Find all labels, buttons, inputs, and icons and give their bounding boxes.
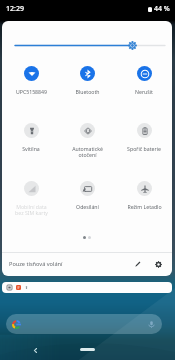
button[interactable]: Settings	[151, 257, 165, 271]
button[interactable]: Home	[80, 348, 95, 351]
staticText: 44 %	[154, 4, 170, 14]
staticText: Odesílání	[76, 203, 99, 210]
staticText: UPC5158849	[16, 88, 47, 95]
button[interactable]: Automatické otočení	[59, 123, 115, 158]
button[interactable]: Spořič baterie	[116, 123, 172, 152]
button[interactable]: Svítilna	[3, 123, 59, 152]
staticText: Mobilní data bez SIM karty	[15, 203, 48, 216]
button[interactable]: Odesílání	[59, 181, 115, 210]
button[interactable]: Search	[6, 314, 162, 334]
button[interactable]: Bluetooth	[59, 66, 115, 95]
button[interactable]: UPC5158849	[3, 66, 59, 95]
button[interactable]: Nerušit	[116, 66, 172, 95]
button[interactable]: Mobilní data bez SIM karty	[3, 181, 59, 216]
staticText: Režim Letadlo	[127, 203, 162, 210]
button[interactable]: Režim Letadlo	[116, 181, 172, 210]
staticText: Spořič baterie	[127, 145, 161, 152]
staticText: Automatické otočení	[72, 145, 103, 158]
staticText: Pouze tísňová volání	[9, 260, 63, 268]
staticText: Svítilna	[22, 145, 40, 152]
staticText: Bluetooth	[75, 88, 100, 95]
button[interactable]: Edit tiles	[131, 257, 145, 271]
staticText: 12:29	[6, 4, 24, 14]
button[interactable]	[2, 282, 172, 293]
button[interactable]: Back	[30, 345, 41, 356]
staticText: Nerušit	[135, 88, 153, 95]
